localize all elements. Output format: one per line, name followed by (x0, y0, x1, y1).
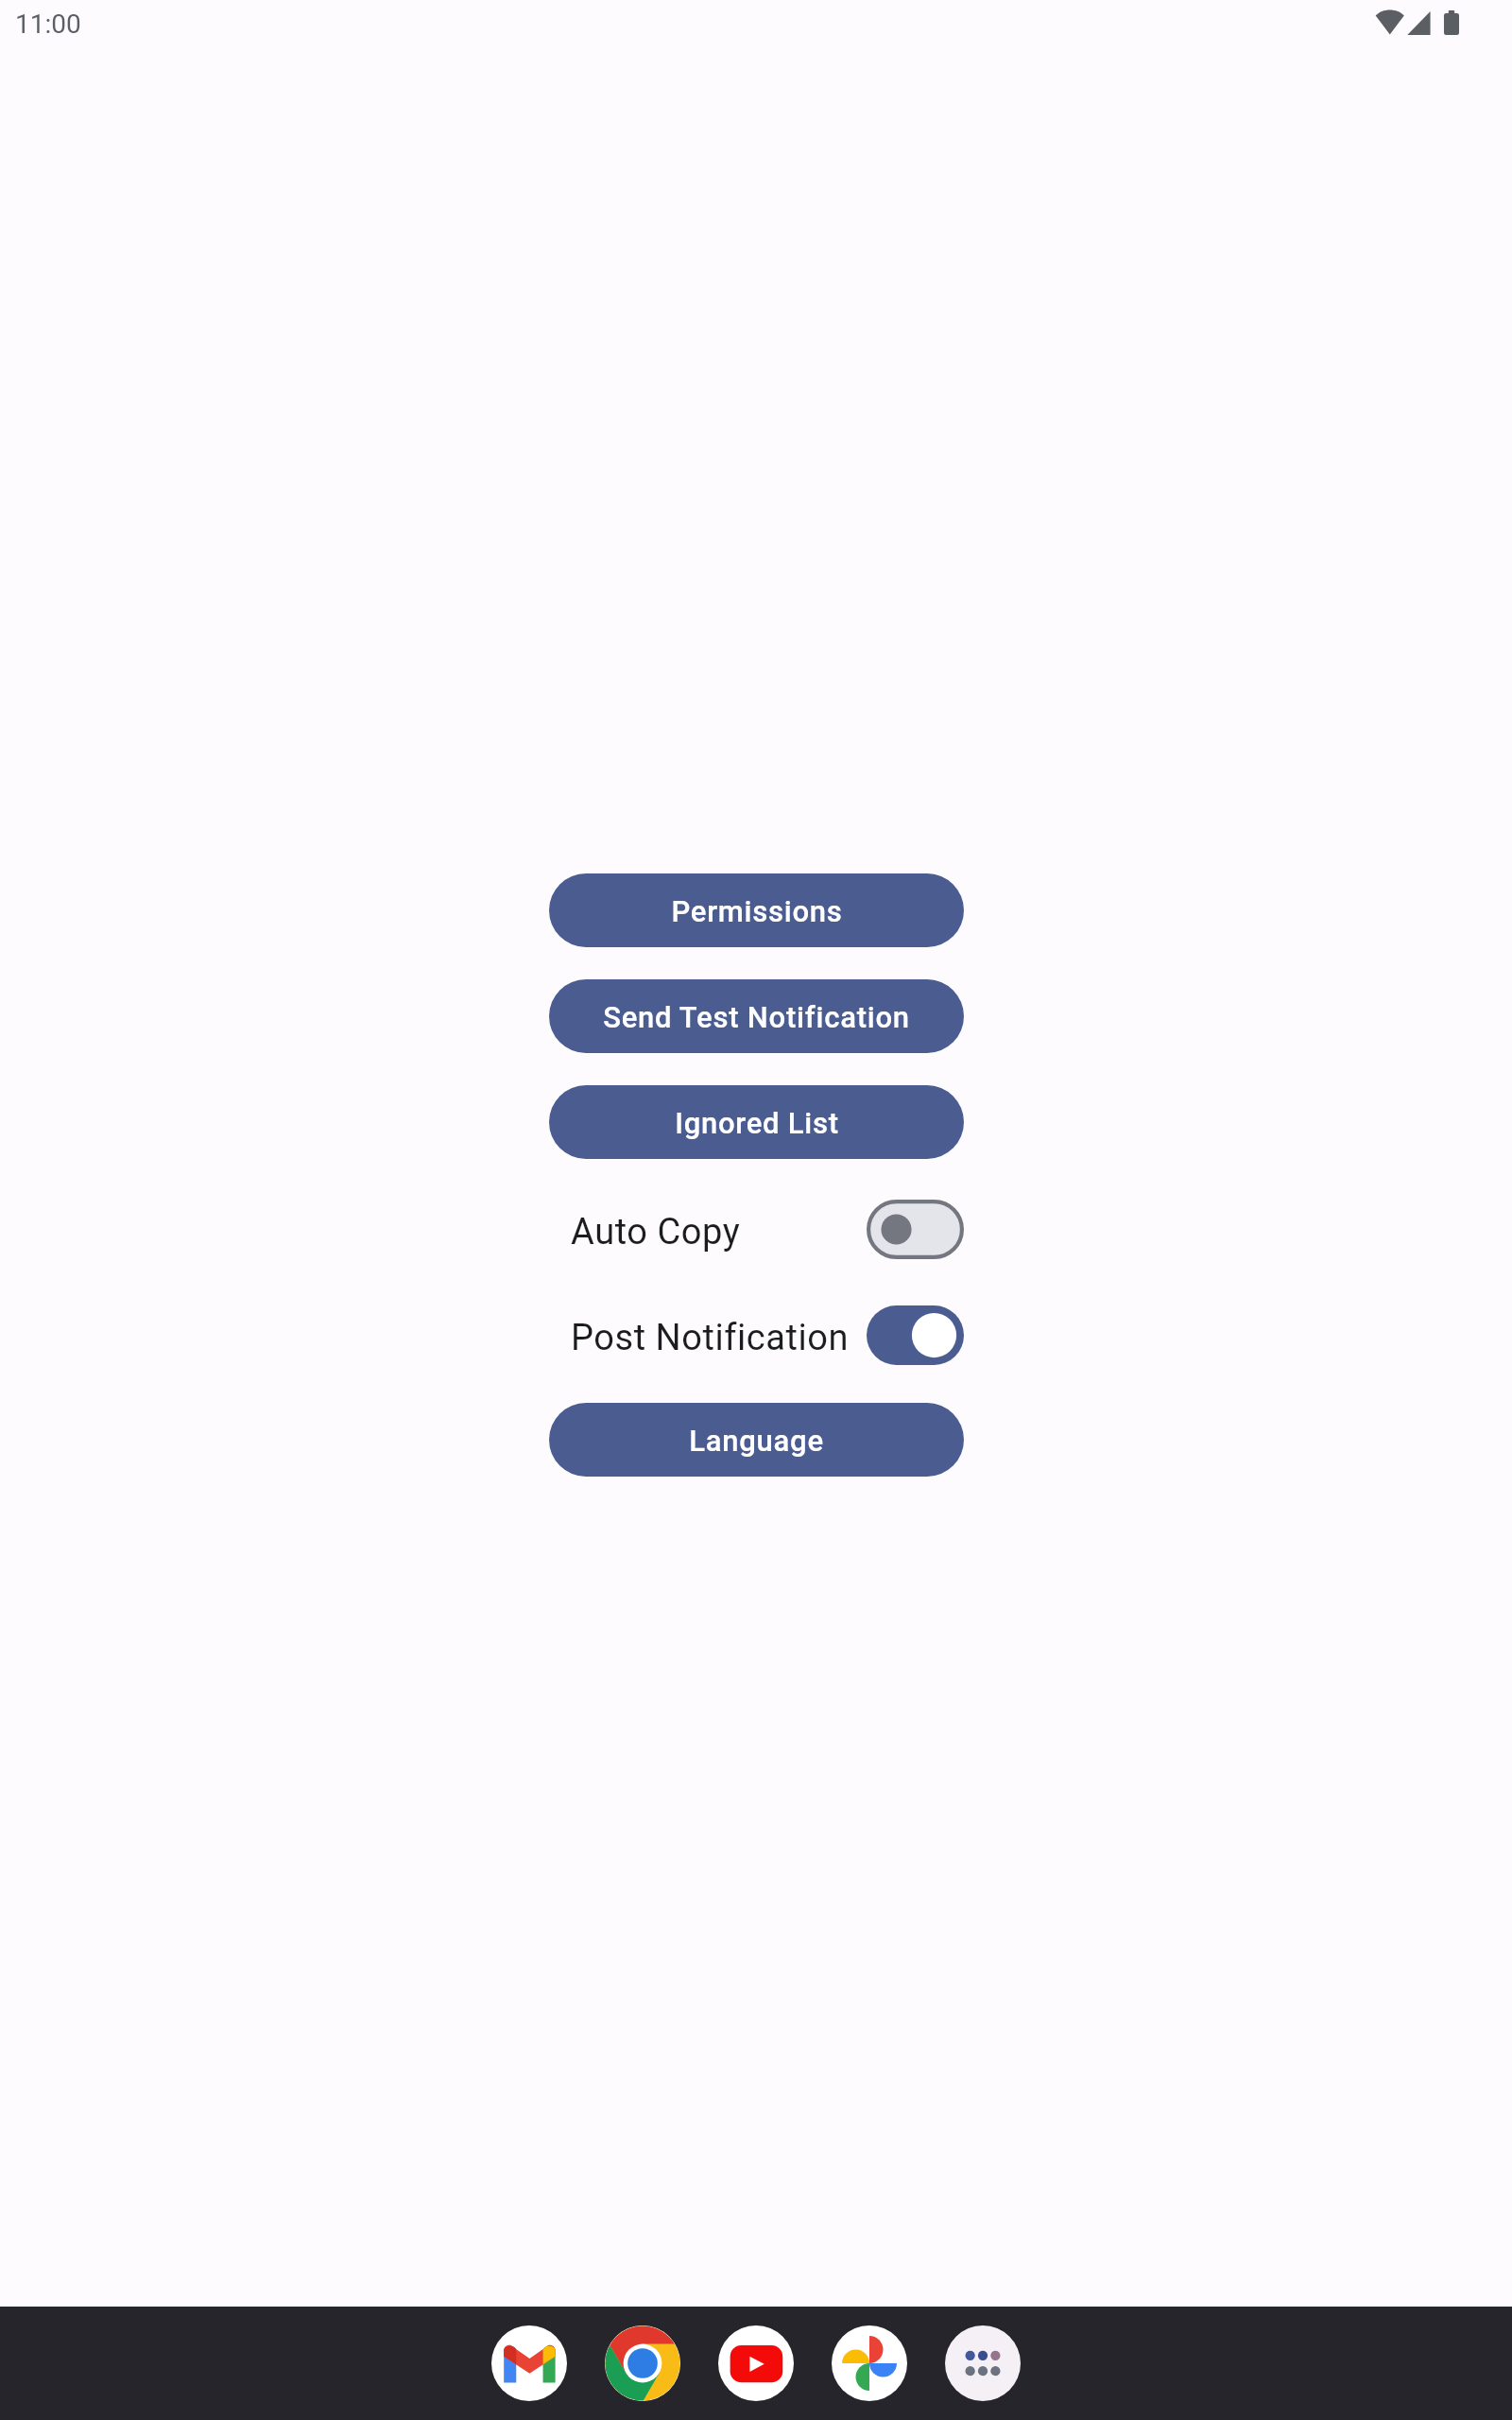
button[interactable]: Send Test Notification (549, 979, 964, 1053)
button[interactable]: All apps (945, 2325, 1021, 2401)
staticText: Auto Copy (571, 1211, 741, 1253)
button[interactable]: Ignored List (549, 1085, 964, 1159)
button[interactable]: Post Notification (549, 1282, 964, 1388)
staticText: Send Test Notification (603, 1000, 910, 1034)
staticText: Post Notification (571, 1317, 850, 1359)
button[interactable]: YouTube (718, 2325, 794, 2401)
staticText: Language (689, 1424, 824, 1458)
button[interactable]: Photos (832, 2325, 907, 2401)
button[interactable]: Language (549, 1403, 964, 1477)
staticText: 11:00 (15, 9, 81, 40)
button[interactable]: Gmail (491, 2325, 567, 2401)
button[interactable]: Permissions (549, 873, 964, 947)
button[interactable]: Auto Copy (549, 1176, 964, 1282)
staticText: Ignored List (675, 1106, 839, 1140)
staticText: Permissions (671, 894, 843, 928)
button[interactable]: Chrome (605, 2325, 680, 2401)
